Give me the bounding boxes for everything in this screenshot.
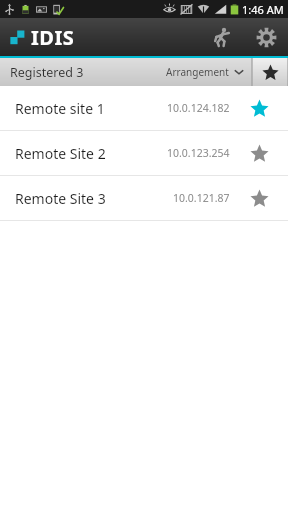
button[interactable]: Remote Site 3 bbox=[0, 176, 288, 220]
button[interactable]: Remove favorite bbox=[230, 86, 288, 130]
staticText: 1:46 AM bbox=[242, 2, 284, 17]
button[interactable]: Arrangement bbox=[166, 58, 244, 86]
staticText: 10.0.124.182 bbox=[167, 101, 230, 115]
button[interactable]: Settings bbox=[244, 18, 288, 56]
button[interactable]: Add favorite bbox=[230, 131, 288, 175]
staticText: Remote Site 2 bbox=[15, 144, 106, 163]
staticText: 10.0.123.254 bbox=[167, 146, 230, 160]
staticText: 10.0.121.87 bbox=[173, 191, 230, 205]
staticText: IDIS bbox=[31, 24, 75, 51]
button[interactable]: Favorites bbox=[252, 58, 288, 86]
button[interactable]: Add favorite bbox=[230, 176, 288, 220]
staticText: Registered 3 bbox=[10, 64, 84, 81]
staticText: Remote site 1 bbox=[15, 99, 105, 118]
staticText: Remote Site 3 bbox=[15, 189, 106, 208]
button[interactable]: Remote Site 2 bbox=[0, 131, 288, 175]
button[interactable]: Remote site 1 bbox=[0, 86, 288, 130]
button[interactable]: Live view bbox=[200, 18, 244, 56]
staticText: Arrangement bbox=[166, 65, 229, 79]
